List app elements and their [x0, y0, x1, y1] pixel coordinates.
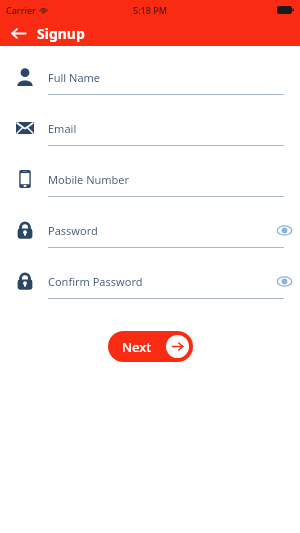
staticText: Full Name: [48, 70, 101, 85]
button[interactable]: Next: [108, 331, 193, 362]
staticText: Confirm Password: [48, 274, 143, 289]
button[interactable]: Full Name: [0, 60, 300, 111]
staticText: Password: [48, 223, 98, 238]
button[interactable]: Confirm Password: [0, 264, 300, 315]
button[interactable]: Email: [0, 111, 300, 162]
staticText: Signup: [37, 24, 85, 43]
button[interactable]: Mobile Number: [0, 162, 300, 213]
staticText: 5:18 PM: [133, 4, 167, 16]
button[interactable]: Show password: [269, 272, 300, 291]
button[interactable]: Password: [0, 213, 300, 264]
button[interactable]: Show password: [269, 221, 300, 240]
staticText: Email: [48, 121, 77, 136]
staticText: Next: [122, 338, 152, 356]
staticText: Carrier: [6, 4, 36, 16]
staticText: Mobile Number: [48, 172, 130, 187]
button[interactable]: Back: [0, 22, 33, 45]
